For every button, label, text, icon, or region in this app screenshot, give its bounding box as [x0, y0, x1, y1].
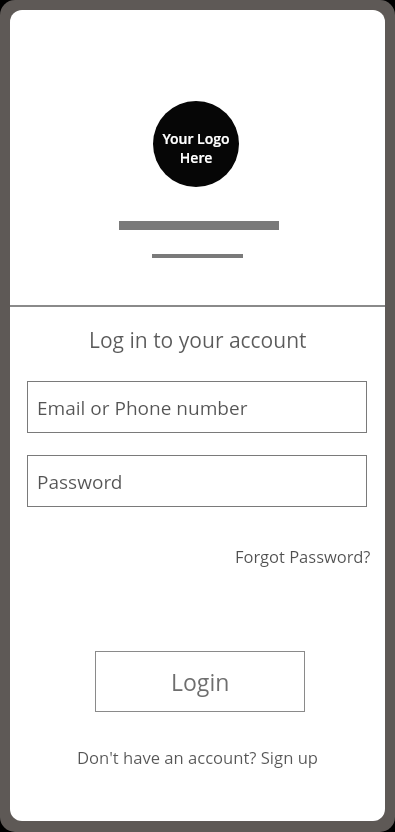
staticText: Password — [37, 469, 123, 495]
staticText: Login — [171, 666, 230, 697]
button[interactable]: Don't have an account? Sign up — [10, 746, 385, 769]
staticText: Your Logo Here — [162, 129, 230, 167]
staticText: Email or Phone number — [37, 395, 248, 421]
staticText: Log in to your account — [89, 326, 307, 355]
staticText: Don't have an account? Sign up — [77, 746, 319, 769]
button[interactable]: Login — [95, 651, 305, 712]
button[interactable]: Forgot Password? — [235, 545, 371, 567]
button[interactable]: Email or Phone number — [27, 381, 367, 433]
button[interactable]: Password — [27, 455, 367, 507]
